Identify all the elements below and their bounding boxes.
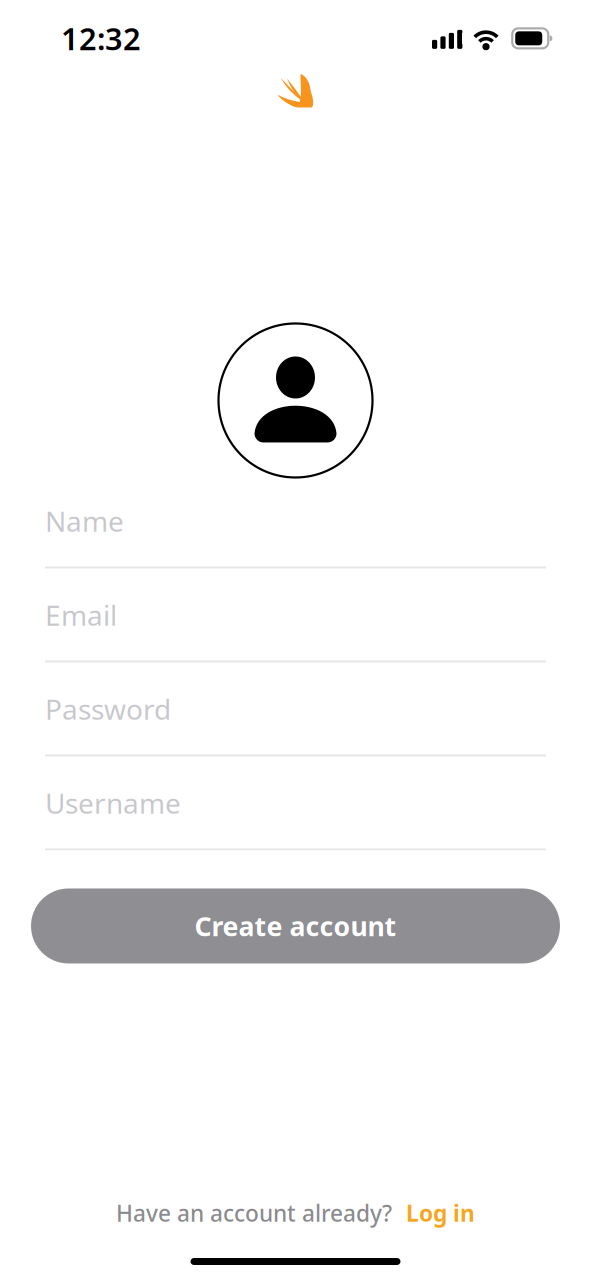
button[interactable]: Create account	[31, 888, 560, 963]
staticText: Password	[45, 690, 171, 727]
staticText: Log in	[406, 1198, 475, 1228]
staticText: 12:32	[61, 18, 141, 59]
staticText: Create account	[194, 908, 396, 944]
button[interactable]: Log in	[406, 1198, 475, 1228]
staticText: Have an account already?	[116, 1198, 392, 1228]
staticText: Username	[45, 784, 181, 821]
staticText: Email	[45, 596, 117, 633]
staticText: Name	[45, 502, 124, 539]
